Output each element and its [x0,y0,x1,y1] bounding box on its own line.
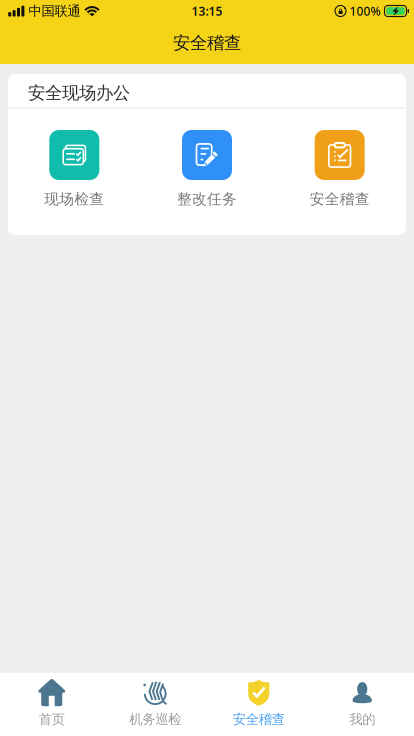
button[interactable]: 安全稽查 [207,671,310,736]
button[interactable]: 首页 [0,671,103,736]
staticText: 安全稽查 [173,32,241,54]
button[interactable]: 安全稽查 [273,130,406,208]
button[interactable]: 我的 [310,671,414,736]
staticText: 安全现场办公 [28,82,130,104]
staticText: 机务巡检 [129,711,181,727]
staticText: 现场检查 [44,190,104,208]
staticText: 100% [349,3,380,19]
staticText: 首页 [39,711,65,727]
button[interactable]: 现场检查 [8,130,141,208]
button[interactable]: 机务巡检 [103,671,207,736]
staticText: 13:15 [191,3,222,19]
staticText: 我的 [349,711,375,727]
staticText: 安全稽查 [233,711,285,727]
button[interactable]: 整改任务 [141,130,273,208]
staticText: 安全稽查 [310,190,370,208]
staticText: 中国联通 [29,3,81,19]
staticText: 整改任务 [177,190,237,208]
